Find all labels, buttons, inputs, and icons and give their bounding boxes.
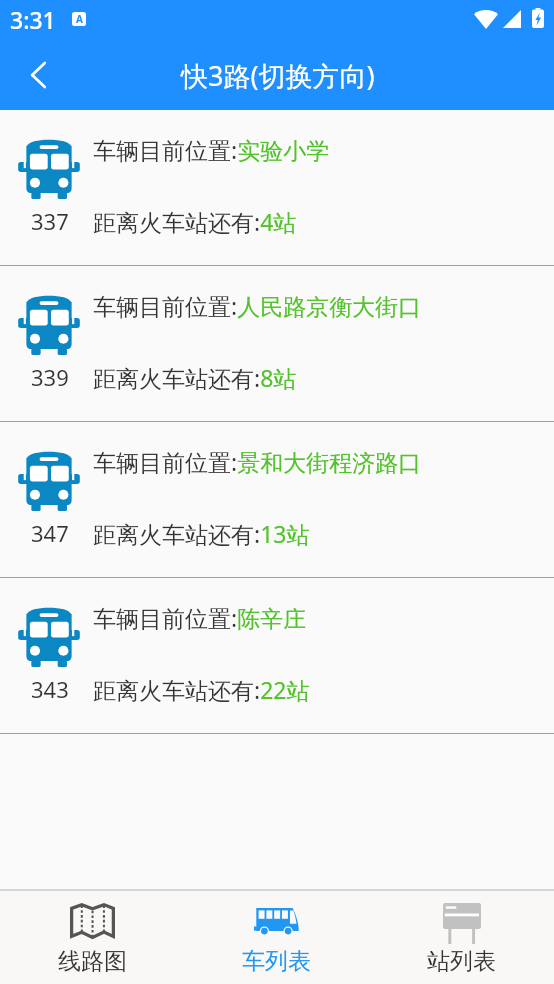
- button[interactable]: Back: [8, 45, 68, 105]
- button[interactable]: 线路图: [0, 891, 184, 984]
- button[interactable]: 347: [0, 422, 554, 577]
- staticText: 车辆目前位置:景和大街程济路口: [93, 446, 422, 477]
- staticText: 车辆目前位置:人民路京衡大街口: [93, 290, 422, 321]
- staticText: 距离火车站还有:22站: [93, 674, 310, 705]
- button[interactable]: 343: [0, 578, 554, 733]
- staticText: 车列表: [242, 947, 311, 976]
- button[interactable]: 车列表: [184, 891, 369, 984]
- staticText: A: [76, 12, 83, 26]
- staticText: 快3路(切换方向): [181, 57, 375, 94]
- button[interactable]: 站列表: [369, 891, 554, 984]
- button[interactable]: 339: [0, 266, 554, 421]
- staticText: 距离火车站还有:8站: [93, 362, 297, 393]
- staticText: 347: [31, 518, 69, 548]
- staticText: 339: [31, 362, 69, 392]
- staticText: 距离火车站还有:13站: [93, 518, 310, 549]
- staticText: 3:31: [10, 4, 56, 35]
- staticText: 距离火车站还有:4站: [93, 206, 297, 237]
- staticText: 站列表: [427, 947, 496, 976]
- staticText: 线路图: [58, 947, 127, 976]
- staticText: 337: [31, 206, 69, 236]
- staticText: 车辆目前位置:实验小学: [93, 134, 330, 165]
- staticText: 343: [31, 674, 69, 704]
- button[interactable]: 337: [0, 110, 554, 265]
- staticText: 车辆目前位置:陈辛庄: [93, 602, 307, 633]
